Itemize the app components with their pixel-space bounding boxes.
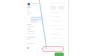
button[interactable]: Send bbox=[55, 52, 64, 56]
button[interactable]: Message field bbox=[42, 46, 63, 51]
